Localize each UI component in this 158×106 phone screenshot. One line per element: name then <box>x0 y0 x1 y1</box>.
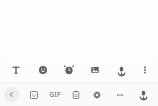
button[interactable]: More options <box>134 58 156 82</box>
button[interactable]: Emoji <box>29 58 56 82</box>
button[interactable]: Back <box>4 87 19 102</box>
button[interactable]: More <box>107 83 133 106</box>
button[interactable]: Stickers <box>24 83 44 106</box>
button[interactable]: Voice typing <box>133 83 154 106</box>
button[interactable]: Recent <box>56 58 82 82</box>
button[interactable]: Clipboard <box>65 83 86 106</box>
button[interactable]: GIF <box>44 83 65 106</box>
button[interactable]: Images <box>82 58 108 82</box>
button[interactable]: Voice input <box>108 58 134 82</box>
button[interactable]: Settings <box>86 83 107 106</box>
staticText: GIF <box>49 90 61 100</box>
button[interactable]: Text formatting <box>2 58 29 82</box>
